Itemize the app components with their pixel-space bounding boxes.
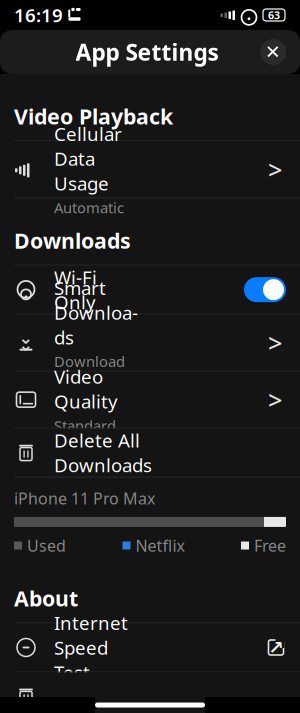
staticText: Downloads: [14, 226, 131, 255]
button[interactable]: Cellular Data Usage: [0, 141, 300, 197]
staticText: App Settings: [75, 37, 218, 67]
staticText: Wi-Fi Only: [54, 265, 97, 314]
staticText: Delete All Downloads: [54, 428, 152, 477]
staticText: Automatic: [54, 198, 124, 217]
button[interactable]: Internet Speed Test: [0, 623, 300, 671]
button[interactable]: [0, 672, 300, 713]
staticText: Netflix: [135, 535, 184, 556]
button[interactable]: Close: [252, 31, 294, 73]
staticText: Used: [27, 535, 66, 556]
staticText: >: [268, 152, 282, 186]
staticText: Smart Downloads: [54, 275, 138, 350]
button[interactable]: Wi-Fi Only: [0, 266, 300, 314]
staticText: ⌄: [18, 335, 33, 354]
staticText: iPhone 11 Pro Max: [14, 488, 155, 509]
staticText: Free: [254, 535, 286, 556]
staticText: Internet Speed Test: [54, 610, 128, 685]
staticText: ⌄: [18, 328, 33, 347]
staticText: 63: [268, 8, 280, 22]
staticText: Standard: [54, 416, 116, 435]
staticText: Video Quality: [54, 364, 118, 414]
staticText: ✕: [265, 41, 281, 63]
staticText: Video Playback: [14, 102, 173, 130]
button[interactable]: ⌄: [0, 315, 300, 371]
staticText: >: [268, 383, 282, 416]
staticText: About: [14, 584, 78, 612]
staticText: 16:19: [14, 3, 63, 27]
button[interactable]: Video Quality: [0, 372, 300, 428]
button[interactable]: Delete All Downloads: [0, 429, 300, 477]
staticText: Download Next Episode: [54, 352, 125, 410]
staticText: >: [268, 326, 282, 359]
staticText: ↗: [268, 637, 284, 658]
staticText: Cellular Data Usage: [54, 121, 122, 196]
